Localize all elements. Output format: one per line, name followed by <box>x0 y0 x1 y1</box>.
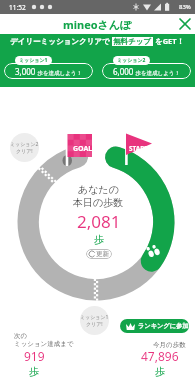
staticText: 歩を達成しよう！ <box>36 69 82 77</box>
staticText: 11:52 <box>9 3 26 12</box>
button[interactable]: 更新 <box>86 249 112 259</box>
staticText: 歩を達成しよう！ <box>134 69 180 77</box>
staticText: 無料チップ <box>113 37 152 46</box>
staticText: GOAL <box>73 144 93 154</box>
button[interactable]: 6,000 <box>102 63 191 79</box>
staticText: 歩 <box>155 365 165 378</box>
staticText: 47,896 <box>141 348 179 364</box>
staticText: 歩 <box>94 233 104 246</box>
staticText: 次の <box>14 332 28 340</box>
staticText: 更新 <box>96 250 109 258</box>
staticText: デイリーミッションクリアで <box>10 37 110 46</box>
staticText: 83% <box>179 3 191 11</box>
staticText: 6,000 <box>113 66 134 77</box>
staticText: ミッション1 <box>19 57 48 64</box>
staticText: クリア! <box>86 321 103 328</box>
button[interactable]: Close <box>175 14 195 34</box>
staticText: をGET！ <box>155 36 185 46</box>
staticText: ミッション2 <box>117 57 146 64</box>
staticText: ミッション達成まで <box>14 340 74 348</box>
staticText: あなたの <box>78 183 119 196</box>
staticText: 本日の歩数 <box>73 196 124 209</box>
staticText: クリア! <box>16 148 33 155</box>
staticText: ミッション2 <box>10 141 39 148</box>
staticText: 3,000 <box>15 66 36 77</box>
staticText: ミッション1 <box>80 314 109 321</box>
staticText: 歩 <box>29 365 39 378</box>
staticText: mineoさんぽ <box>63 17 132 32</box>
staticText: 今月の歩数 <box>153 341 186 349</box>
staticText: START <box>129 144 149 153</box>
button[interactable]: ランキングに参加 <box>120 319 189 333</box>
staticText: 919 <box>24 348 45 364</box>
button[interactable]: 3,000 <box>4 63 93 79</box>
button[interactable]: デイリーミッションクリアで <box>0 34 195 48</box>
staticText: ランキングに参加 <box>138 322 189 330</box>
staticText: 2,081 <box>77 210 121 233</box>
